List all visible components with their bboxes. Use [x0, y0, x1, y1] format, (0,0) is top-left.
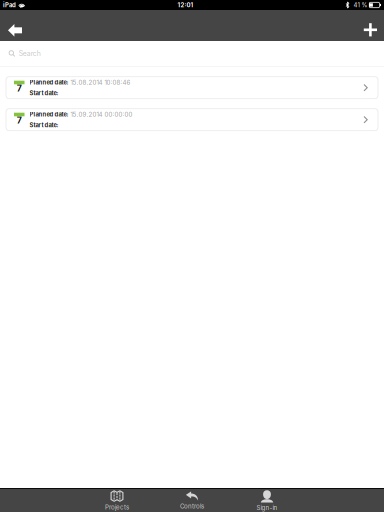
staticText: Planned date:: [29, 111, 68, 118]
button[interactable]: Controls: [174, 491, 209, 510]
button[interactable]: Add: [364, 10, 384, 41]
button[interactable]: Search: [0, 41, 384, 66]
staticText: Start date:: [29, 90, 58, 97]
staticText: Start date:: [29, 122, 58, 129]
staticText: Planned date:: [29, 79, 68, 86]
button[interactable]: 7: [6, 109, 378, 131]
staticText: 15.08.2014 10:08:46: [70, 79, 130, 86]
button[interactable]: Projects: [99, 490, 134, 511]
staticText: 41 %: [353, 1, 367, 9]
staticText: Sign-in: [256, 504, 277, 511]
staticText: iPad: [3, 1, 16, 9]
button[interactable]: 7: [6, 77, 378, 99]
staticText: Projects: [105, 503, 129, 511]
staticText: 7: [17, 115, 22, 126]
staticText: Controls: [180, 502, 204, 510]
button[interactable]: Sign-in: [249, 489, 284, 511]
staticText: 7: [17, 83, 22, 94]
button[interactable]: Back: [0, 10, 22, 41]
staticText: 12:01: [177, 1, 193, 9]
staticText: 15.09.2014 00:00:00: [70, 111, 132, 118]
staticText: Search: [19, 49, 41, 58]
